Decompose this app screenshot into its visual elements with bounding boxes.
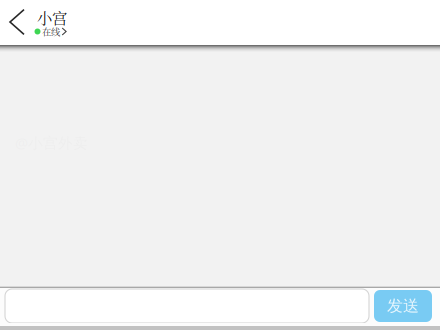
button[interactable]: 在线 xyxy=(34,25,67,37)
staticText: 发送 xyxy=(387,296,419,316)
button[interactable]: Message input xyxy=(5,289,369,323)
button[interactable]: Back xyxy=(0,0,34,44)
staticText: 在线 xyxy=(42,25,60,38)
button[interactable]: 发送 xyxy=(374,290,432,322)
staticText: 小宫 xyxy=(37,6,67,28)
